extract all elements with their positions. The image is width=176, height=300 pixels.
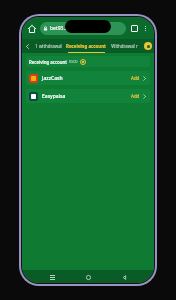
staticText: JazzCash: [42, 75, 63, 82]
staticText: bet93...: [50, 25, 68, 32]
button[interactable]: Home: [25, 22, 38, 35]
button[interactable]: Receiving account: [26, 56, 150, 67]
staticText: Add: [131, 93, 140, 99]
button[interactable]: Receiving account: [64, 39, 108, 53]
button[interactable]: Back: [22, 39, 32, 53]
staticText: (0/2): [69, 59, 78, 64]
button[interactable]: Recent apps: [46, 271, 58, 283]
button[interactable]: Tabs: [128, 22, 140, 34]
staticText: Add: [131, 75, 140, 81]
button[interactable]: Home: [82, 271, 94, 283]
staticText: Receiving account: [66, 43, 106, 49]
button[interactable]: More options: [140, 23, 151, 34]
staticText: Withdrawal r: [111, 43, 138, 49]
button[interactable]: bet93...: [40, 22, 126, 35]
button[interactable]: 1 withdrawal: [32, 39, 64, 53]
staticText: Receiving account: [29, 59, 67, 65]
button[interactable]: Withdrawal r: [108, 39, 141, 53]
button[interactable]: Account: [141, 39, 154, 53]
button[interactable]: JazzCash: [26, 71, 150, 85]
button[interactable]: Easypaisa: [26, 89, 150, 103]
button[interactable]: Back: [118, 271, 130, 283]
staticText: Easypaisa: [42, 93, 66, 100]
staticText: 1 withdrawal: [35, 43, 62, 49]
